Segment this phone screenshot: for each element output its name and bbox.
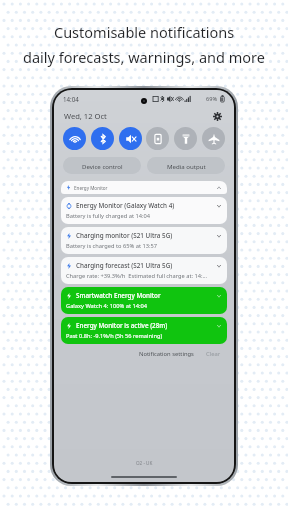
staticText: Past 0.8h: -9.1%/h (5h 56 remaining) bbox=[66, 332, 163, 340]
staticText: Energy Monitor is active (28m) bbox=[76, 321, 168, 330]
button[interactable]: Media output bbox=[147, 157, 225, 174]
staticText: Energy Monitor bbox=[74, 185, 108, 191]
staticText: Smartwatch Energy Monitor bbox=[76, 291, 161, 300]
button[interactable]: Notification settings bbox=[137, 348, 196, 360]
staticText: Media output bbox=[167, 162, 206, 170]
staticText: Charging forecast (S21 Ultra 5G) bbox=[76, 261, 173, 270]
button[interactable]: Mute bbox=[119, 127, 142, 150]
button[interactable]: Device control bbox=[63, 157, 141, 174]
staticText: Clear bbox=[206, 350, 221, 358]
staticText: Customisable notifications bbox=[54, 22, 235, 42]
button[interactable]: Settings bbox=[210, 109, 224, 123]
button[interactable]: Smartwatch Energy Monitor bbox=[61, 287, 227, 314]
button[interactable]: Flight mode bbox=[202, 127, 225, 150]
button[interactable]: Clear bbox=[204, 348, 223, 360]
button[interactable]: Charging monitor (S21 Ultra 5G) bbox=[61, 227, 227, 254]
staticText: Charge rate: +39.3%/h Estimated full cha… bbox=[66, 272, 208, 280]
staticText: O2 - UK bbox=[136, 460, 153, 466]
button[interactable]: Auto rotate bbox=[146, 127, 169, 150]
button[interactable]: Charging forecast (S21 Ultra 5G) bbox=[61, 257, 227, 284]
staticText: Charging monitor (S21 Ultra 5G) bbox=[76, 231, 173, 240]
staticText: Battery is charged to 65% at 13:57 bbox=[66, 242, 157, 250]
staticText: Device control bbox=[82, 162, 123, 170]
staticText: Wed, 12 Oct bbox=[64, 111, 107, 121]
staticText: 14:04 bbox=[63, 95, 79, 103]
button[interactable]: Energy Monitor is active (28m) bbox=[61, 317, 227, 344]
staticText: Battery is fully charged at 14:04 bbox=[66, 212, 151, 220]
button[interactable]: Energy Monitor (Galaxy Watch 4) bbox=[61, 197, 227, 224]
button[interactable]: Flashlight bbox=[174, 127, 197, 150]
button[interactable]: Wi-Fi bbox=[63, 127, 86, 150]
staticText: Galaxy Watch 4: 100% at 14:04 bbox=[66, 302, 148, 310]
staticText: Energy Monitor (Galaxy Watch 4) bbox=[76, 201, 175, 210]
staticText: Notification settings bbox=[139, 350, 194, 358]
button[interactable]: Energy Monitor bbox=[61, 181, 227, 194]
staticText: 69% bbox=[206, 95, 218, 103]
staticText: daily forecasts, warnings, and more bbox=[23, 47, 265, 67]
button[interactable]: Bluetooth bbox=[91, 127, 114, 150]
